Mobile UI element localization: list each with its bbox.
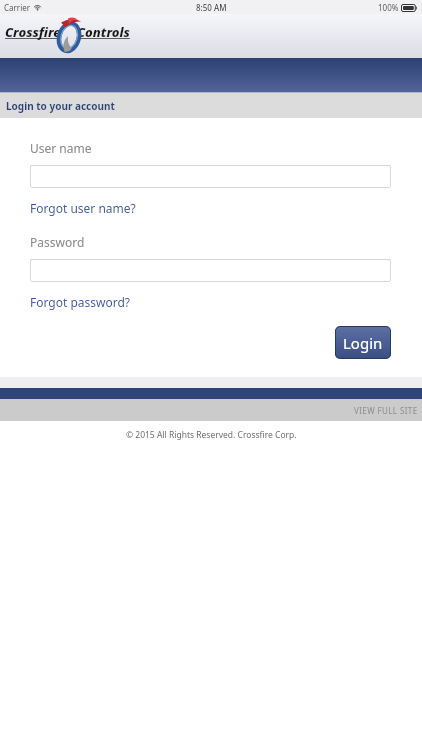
staticText: User name <box>30 140 92 156</box>
staticText: 100% <box>378 2 399 13</box>
staticText: 8:50 AM <box>196 2 227 13</box>
button[interactable]: Login <box>335 326 391 359</box>
staticText: Crossfire <box>5 23 61 41</box>
staticText: Carrier <box>4 2 31 13</box>
staticText: Login <box>343 333 383 353</box>
staticText: Forgot password? <box>30 294 131 310</box>
staticText: VIEW FULL SITE <box>354 405 418 416</box>
button[interactable]: Password input <box>30 259 391 282</box>
staticText: © 2015 All Rights Reserved. Crossfire Co… <box>126 429 297 441</box>
staticText: Controls <box>77 23 130 41</box>
button[interactable]: VIEW FULL SITE <box>0 399 422 421</box>
button[interactable]: Forgot password? <box>30 294 131 310</box>
staticText: Password <box>30 234 85 250</box>
staticText: Login to your account <box>6 99 115 113</box>
button[interactable]: User name input <box>30 165 391 188</box>
button[interactable]: Forgot user name? <box>30 200 136 216</box>
button[interactable]: Crossfire Controls home <box>4 16 136 56</box>
staticText: Forgot user name? <box>30 200 136 216</box>
